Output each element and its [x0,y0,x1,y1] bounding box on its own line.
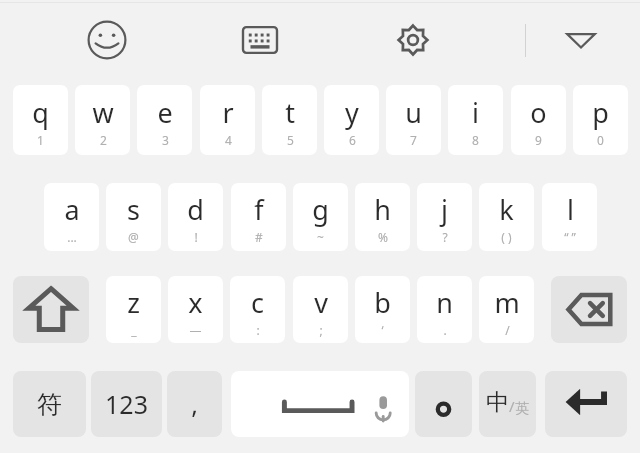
button[interactable]: d [168,183,223,251]
staticText: 1 [37,132,44,148]
staticText: l [567,191,574,228]
staticText: x [188,284,203,321]
button[interactable]: Chinese English toggle [479,371,536,437]
staticText: ‘ [381,322,384,338]
button[interactable]: j [417,183,472,251]
button[interactable]: Keyboard [236,16,284,64]
button[interactable]: m [479,276,534,343]
staticText: f [254,191,264,228]
button[interactable]: e [137,85,192,155]
staticText: ; [319,322,323,338]
button[interactable]: y [324,85,379,155]
staticText: 9 [535,132,542,148]
staticText: 符 [37,389,62,420]
staticText: o [530,94,547,131]
staticText: 英 [515,400,529,418]
button[interactable]: k [479,183,534,251]
staticText: / [505,322,510,338]
staticText: t [285,94,295,131]
button[interactable]: u [386,85,441,155]
button[interactable]: Hide keyboard [557,16,605,64]
staticText: 8 [472,132,479,148]
staticText: ! [194,229,198,245]
staticText: 7 [410,132,417,148]
staticText: k [499,191,514,228]
staticText: ... [67,229,77,245]
staticText: @ [128,229,139,245]
button[interactable]: Backspace [551,276,627,343]
button[interactable]: v [293,276,348,343]
staticText: # [255,229,263,245]
staticText: i [472,94,479,131]
button[interactable]: s [106,183,161,251]
button[interactable]: f [231,183,286,251]
staticText: y [345,94,359,131]
button[interactable]: l [542,183,597,251]
button[interactable]: , [167,371,222,437]
button[interactable]: c [230,276,285,343]
button[interactable]: b [355,276,410,343]
button[interactable]: 符 [13,371,86,437]
button[interactable]: t [262,85,317,155]
staticText: d [187,191,204,228]
staticText: ( ) [501,229,512,245]
staticText: _ [131,322,137,338]
staticText: 中 [486,388,509,417]
staticText: z [127,284,140,321]
button[interactable]: w [75,85,130,155]
staticText: 5 [287,132,294,148]
button[interactable]: Settings [389,16,437,64]
staticText: 2 [100,132,107,148]
staticText: 0 [597,132,604,148]
staticText: p [592,94,609,131]
button[interactable]: p [573,85,628,155]
staticText: ? [442,229,448,245]
staticText: c [251,284,264,321]
button[interactable]: Emoji [83,16,131,64]
staticText: h [374,191,391,228]
staticText: v [314,284,328,321]
staticText: 4 [225,132,232,148]
staticText: / [509,396,515,416]
button[interactable]: Shift [13,276,89,343]
staticText: . [443,322,447,338]
staticText: , [191,387,198,421]
button[interactable]: 123 [91,371,162,437]
staticText: s [127,191,140,228]
button[interactable]: Enter [545,371,627,437]
staticText: 6 [349,132,356,148]
button[interactable]: q [13,85,68,155]
staticText: r [222,94,234,131]
staticText: g [312,191,329,228]
button[interactable]: o [511,85,566,155]
staticText: b [374,284,391,321]
staticText: ~ [317,229,324,245]
staticText: — [189,322,202,338]
staticText: 3 [162,132,169,148]
button[interactable]: g [293,183,348,251]
staticText: % [378,229,388,245]
button[interactable]: i [448,85,503,155]
staticText: : [256,322,260,338]
button[interactable]: Space [231,371,409,437]
staticText: “ ” [564,229,576,245]
button[interactable]: r [200,85,255,155]
staticText: u [405,94,422,131]
button[interactable]: a [44,183,99,251]
button[interactable]: n [417,276,472,343]
staticText: q [32,94,49,131]
staticText: e [157,94,173,131]
button[interactable]: x [168,276,223,343]
staticText: 123 [105,387,148,421]
staticText: m [494,284,520,321]
staticText: j [441,191,448,228]
button[interactable]: h [355,183,410,251]
button[interactable]: z [106,276,161,343]
staticText: a [64,191,80,228]
staticText: w [92,94,114,131]
button[interactable]: Period [415,371,472,437]
staticText: n [436,284,453,321]
